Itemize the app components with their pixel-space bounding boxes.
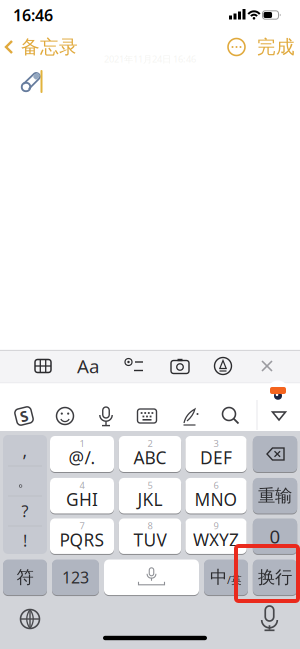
staticText: ,: [22, 439, 27, 462]
staticText: 1: [79, 437, 84, 450]
staticText: 16:46: [13, 4, 53, 26]
staticText: 2: [147, 437, 152, 450]
button[interactable]: 换行: [253, 558, 297, 596]
staticText: TUV: [133, 528, 166, 551]
button[interactable]: 表格: [28, 351, 58, 381]
button[interactable]: [253, 435, 297, 473]
button[interactable]: 键盘: [133, 402, 161, 430]
button[interactable]: 0: [253, 517, 297, 555]
button[interactable]: 9: [185, 517, 247, 555]
staticText: 符: [16, 567, 33, 588]
staticText: 重输: [258, 485, 292, 506]
staticText: 7: [79, 519, 84, 532]
button[interactable]: 切换键盘: [15, 604, 45, 634]
staticText: 8: [147, 519, 152, 532]
button[interactable]: 格式: [73, 351, 103, 381]
button[interactable]: 重输: [253, 477, 297, 514]
staticText: MNO: [194, 488, 237, 511]
staticText: GHI: [66, 488, 98, 511]
staticText: 4: [79, 479, 84, 491]
staticText: 完成: [257, 35, 295, 58]
staticText: WXYZ: [193, 528, 239, 551]
button[interactable]: 4: [50, 477, 114, 514]
button[interactable]: 2: [119, 435, 181, 473]
button[interactable]: 标记: [208, 351, 238, 381]
staticText: 123: [62, 567, 89, 588]
button[interactable]: 符: [3, 558, 47, 596]
button[interactable]: 核对清单: [119, 351, 149, 381]
button[interactable]: 8: [119, 517, 181, 555]
staticText: !: [23, 530, 27, 551]
button[interactable]: 完成: [256, 32, 296, 62]
button[interactable]: 收起键盘: [267, 403, 291, 427]
button[interactable]: 关闭: [252, 351, 282, 381]
button[interactable]: 3: [185, 435, 247, 473]
button[interactable]: 空格: [104, 558, 199, 596]
button[interactable]: 返回备忘录: [3, 32, 79, 62]
staticText: 2021年11月24日 16:46: [104, 53, 196, 65]
button[interactable]: 123: [52, 558, 99, 596]
staticText: 9: [213, 519, 218, 532]
staticText: 6: [213, 479, 218, 491]
staticText: DEF: [200, 446, 232, 469]
staticText: /英: [227, 573, 242, 587]
staticText: S: [20, 406, 28, 426]
staticText: JKL: [137, 488, 162, 511]
button[interactable]: ！: [3, 526, 47, 555]
button[interactable]: 搜狗输入法: [10, 402, 38, 430]
button[interactable]: ，: [3, 436, 47, 465]
button[interactable]: 1: [50, 435, 114, 473]
staticText: 中: [210, 567, 227, 588]
staticText: Aa: [77, 354, 99, 378]
staticText: ABC: [133, 446, 166, 469]
staticText: @/.: [68, 446, 95, 469]
button[interactable]: 6: [185, 477, 247, 514]
button[interactable]: 7: [50, 517, 114, 555]
staticText: PQRS: [59, 528, 104, 551]
button[interactable]: 表情: [51, 402, 79, 430]
staticText: 备忘录: [21, 35, 78, 58]
staticText: 。: [17, 472, 32, 490]
button[interactable]: 搜索: [217, 402, 245, 430]
staticText: 3: [213, 437, 218, 450]
staticText: 5: [147, 479, 152, 491]
button[interactable]: 相机: [165, 351, 195, 381]
button[interactable]: 手写: [176, 402, 204, 430]
button[interactable]: 语音: [92, 402, 120, 430]
staticText: 换行: [258, 567, 292, 588]
staticText: ?: [21, 500, 28, 522]
button[interactable]: 。: [3, 466, 47, 495]
button[interactable]: 中: [204, 558, 248, 596]
button[interactable]: 听写: [254, 603, 284, 633]
button[interactable]: ？: [3, 496, 47, 525]
button[interactable]: 更多: [223, 34, 249, 60]
staticText: 0: [269, 524, 280, 549]
button[interactable]: 5: [119, 477, 181, 514]
